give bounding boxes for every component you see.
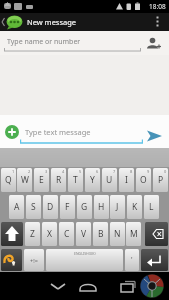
staticText: Type text message [25,127,91,137]
staticText: T [73,174,78,186]
button[interactable] [76,276,100,296]
button[interactable]: V [76,222,91,246]
staticText: 5 [79,169,82,174]
button[interactable]: T [68,168,83,192]
button[interactable]: +!= [24,249,44,271]
staticText: 9 [147,169,150,174]
staticText: I [125,174,128,186]
staticText: K [132,201,138,213]
staticText: ' [131,255,133,265]
staticText: Y [90,174,95,186]
button[interactable] [145,222,168,246]
button[interactable]: F [60,195,75,219]
button[interactable]: ' [125,249,139,271]
button[interactable] [1,249,22,271]
button[interactable]: L [144,195,159,219]
button[interactable]: Y [85,168,100,192]
button[interactable]: M [126,222,141,246]
button[interactable]: E [34,168,49,192]
staticText: 18:08 [149,2,166,11]
staticText: D [47,201,54,213]
button[interactable]: Z [25,222,40,246]
button[interactable]: P [153,168,168,192]
staticText: V [81,228,87,240]
staticText: O [140,174,147,186]
staticText: W [21,174,29,186]
button[interactable]: ENGLISH(UK) [46,249,123,271]
button[interactable]: J [110,195,125,219]
staticText: +!= [30,257,38,264]
staticText: 6 [96,169,99,174]
button[interactable]: H [94,195,109,219]
staticText: 8 [130,169,133,174]
staticText: Type name or number [7,37,81,47]
staticText: R [56,174,62,186]
staticText: F [65,201,70,213]
button[interactable]: U [102,168,117,192]
staticText: 0 [164,169,167,174]
button[interactable]: Type name or number [0,31,169,55]
button[interactable]: R [51,168,66,192]
button[interactable] [5,125,19,139]
button[interactable]: B [93,222,108,246]
button[interactable] [139,273,165,299]
staticText: A [14,201,20,213]
staticText: Z [30,228,35,240]
staticText: S [31,201,36,213]
staticText: C [64,228,70,240]
button[interactable] [46,276,70,296]
button[interactable]: I [119,168,134,192]
staticText: G [81,201,88,213]
button[interactable]: Q [1,168,16,192]
staticText: Q [5,174,12,186]
button[interactable]: New message [0,13,169,31]
staticText: 3 [45,169,48,174]
button[interactable]: N [110,222,125,246]
staticText: J [116,201,119,213]
staticText: U [106,174,113,186]
staticText: E [39,174,44,186]
button[interactable]: O [136,168,151,192]
staticText: ENGLISH(UK) [74,251,96,256]
staticText: B [98,228,104,240]
button[interactable] [116,276,140,296]
staticText: P [158,174,164,186]
button[interactable] [1,222,23,246]
staticText: N [114,228,121,240]
staticText: 2 [28,169,31,174]
button[interactable]: W [17,168,32,192]
staticText: M [130,228,138,240]
button[interactable]: S [26,195,41,219]
staticText: L [149,201,154,213]
button[interactable] [141,249,168,271]
button[interactable]: K [127,195,142,219]
button[interactable] [143,125,167,145]
staticText: 4 [62,169,65,174]
staticText: H [98,201,105,213]
staticText: 7 [113,169,116,174]
button[interactable]: D [43,195,58,219]
staticText: New message [27,17,77,27]
button[interactable]: A [9,195,24,219]
button[interactable]: C [59,222,74,246]
button[interactable]: X [42,222,57,246]
staticText: 1 [12,169,15,174]
button[interactable]: G [77,195,92,219]
staticText: X [47,228,52,240]
